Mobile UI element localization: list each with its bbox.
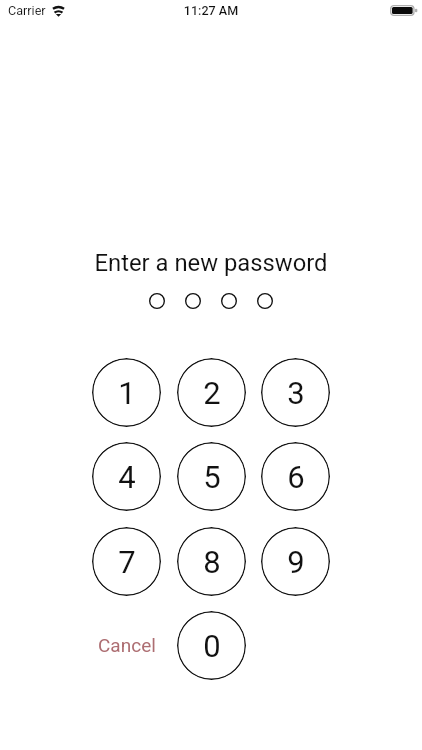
button[interactable]: Cancel [98, 610, 167, 679]
button[interactable]: 4 [92, 442, 161, 511]
button[interactable]: 0 [177, 611, 246, 680]
staticText: Carrier [8, 3, 46, 18]
staticText: 6 [287, 459, 305, 495]
staticText: 3 [287, 375, 305, 411]
button[interactable]: 1 [92, 358, 161, 427]
staticText: 7 [118, 544, 136, 580]
button[interactable]: 6 [261, 442, 330, 511]
button[interactable]: 2 [177, 358, 246, 427]
staticText: 1 [118, 375, 136, 411]
button[interactable]: 8 [177, 527, 246, 596]
staticText: 0 [203, 628, 221, 664]
button[interactable]: 3 [261, 358, 330, 427]
staticText: 11:27 AM [0, 3, 422, 18]
staticText: 2 [203, 375, 221, 411]
staticText: Enter a new password [0, 249, 422, 277]
other: Wi-Fi [51, 5, 66, 16]
button[interactable]: 9 [261, 527, 330, 596]
button[interactable]: 7 [92, 527, 161, 596]
staticText: 9 [287, 544, 305, 580]
staticText: 5 [203, 459, 221, 495]
staticText: 4 [118, 459, 136, 495]
staticText: Cancel [98, 634, 156, 656]
button[interactable]: 5 [177, 442, 246, 511]
staticText: 8 [203, 544, 221, 580]
